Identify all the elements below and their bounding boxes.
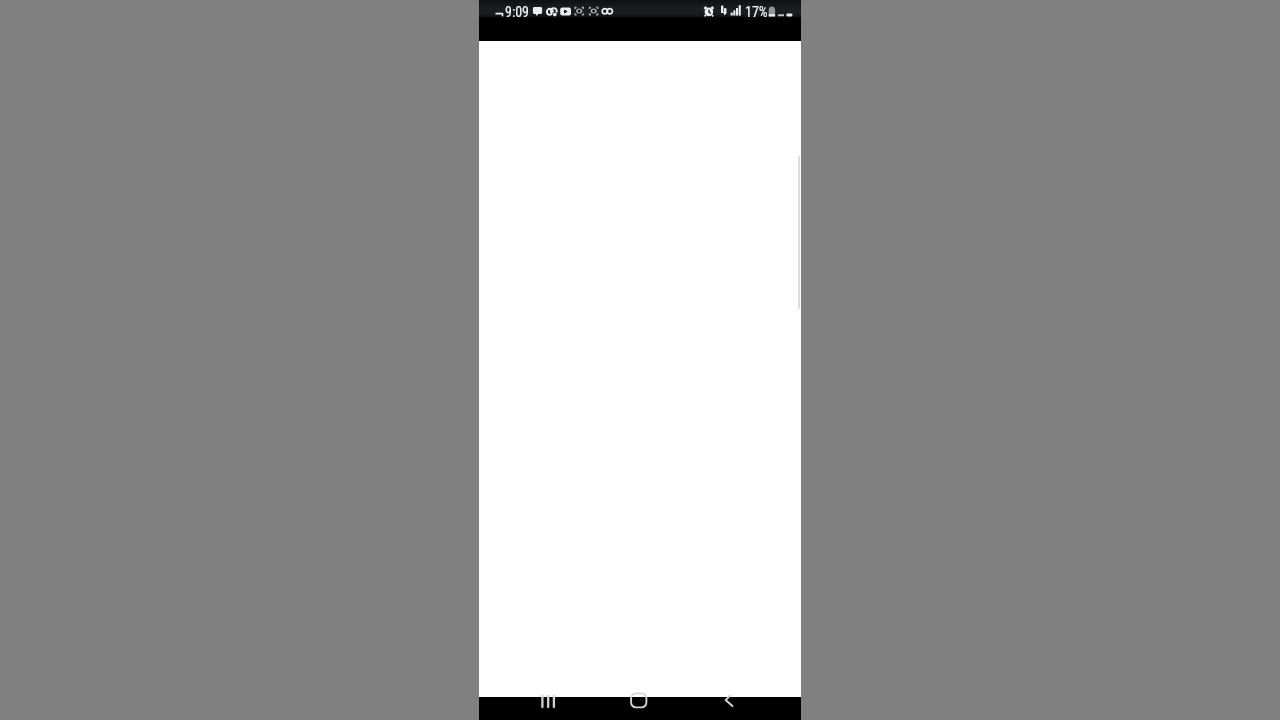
- button[interactable]: Recent apps: [527, 697, 569, 720]
- button[interactable]: Back: [711, 697, 751, 720]
- staticText: 17%: [745, 4, 768, 20]
- button[interactable]: Home: [618, 697, 658, 720]
- staticText: 9:09: [505, 4, 530, 20]
